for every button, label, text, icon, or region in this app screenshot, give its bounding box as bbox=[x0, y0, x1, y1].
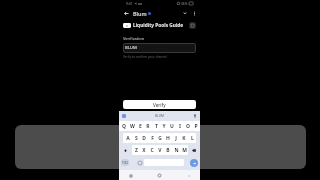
button[interactable]: L bbox=[188, 133, 196, 143]
staticText: Verification bbox=[123, 36, 145, 41]
button[interactable]: B bbox=[164, 145, 172, 155]
button[interactable]: D bbox=[140, 133, 148, 143]
staticText: M bbox=[182, 147, 187, 154]
button[interactable]: C bbox=[148, 145, 156, 155]
staticText: W bbox=[130, 123, 135, 130]
staticText: BLUM bbox=[125, 45, 137, 51]
staticText: C bbox=[150, 147, 154, 154]
button[interactable]: Enter bbox=[190, 159, 198, 167]
button[interactable]: Liquidity Pools Guide bbox=[123, 19, 196, 31]
button[interactable]: Google search bbox=[137, 160, 142, 165]
button[interactable]: V bbox=[156, 145, 164, 155]
staticText: Q bbox=[122, 123, 126, 130]
staticText: R bbox=[146, 123, 150, 130]
button[interactable]: E bbox=[136, 121, 144, 131]
button[interactable]: Q bbox=[119, 121, 128, 131]
staticText: Blum bbox=[133, 10, 147, 17]
button[interactable]: H bbox=[164, 133, 172, 143]
button[interactable]: K bbox=[180, 133, 188, 143]
staticText: X bbox=[142, 147, 146, 154]
button[interactable]: Back bbox=[185, 172, 192, 179]
staticText: V bbox=[158, 147, 162, 154]
staticText: Y bbox=[162, 123, 166, 130]
button[interactable]: R bbox=[144, 121, 152, 131]
button[interactable]: Keyboard settings bbox=[121, 113, 127, 119]
button[interactable]: X bbox=[140, 145, 148, 155]
staticText: Z bbox=[135, 147, 138, 154]
button[interactable]: Open video bbox=[189, 22, 196, 29]
button[interactable]: Backspace bbox=[188, 145, 200, 155]
staticText: K bbox=[182, 135, 186, 142]
staticText: 36% bbox=[181, 2, 188, 6]
button[interactable]: O bbox=[184, 121, 192, 131]
button[interactable]: Back bbox=[121, 8, 131, 18]
button[interactable]: M bbox=[180, 145, 188, 155]
button[interactable]: T bbox=[152, 121, 160, 131]
staticText: I bbox=[179, 123, 181, 130]
staticText: U bbox=[170, 123, 174, 130]
staticText: E bbox=[139, 123, 142, 130]
staticText: F bbox=[151, 135, 154, 142]
staticText: Verify to confirm your channel bbox=[123, 55, 167, 59]
button[interactable]: P bbox=[192, 121, 200, 131]
staticText: 9:41 bbox=[126, 2, 133, 6]
staticText: Liquidity Pools Guide bbox=[133, 22, 184, 29]
button[interactable]: J bbox=[172, 133, 180, 143]
staticText: BLUM bbox=[155, 114, 164, 118]
staticText: G bbox=[158, 135, 162, 142]
staticText: S bbox=[135, 135, 138, 142]
button[interactable]: Recents bbox=[127, 172, 134, 179]
button[interactable]: Home bbox=[156, 172, 163, 179]
staticText: T bbox=[155, 123, 158, 130]
button[interactable]: A bbox=[123, 133, 132, 143]
button[interactable]: More options bbox=[190, 9, 198, 17]
button[interactable]: Y bbox=[160, 121, 168, 131]
staticText: L bbox=[191, 135, 194, 142]
staticText: ?123 bbox=[122, 161, 128, 165]
staticText: D bbox=[142, 135, 146, 142]
button[interactable]: Verify bbox=[123, 100, 196, 109]
staticText: J bbox=[175, 135, 177, 142]
staticText: H bbox=[166, 135, 170, 142]
button[interactable]: Expand bbox=[180, 8, 190, 18]
button[interactable]: BLUM bbox=[123, 43, 196, 53]
staticText: O bbox=[186, 123, 190, 130]
button[interactable]: S bbox=[132, 133, 140, 143]
button[interactable]: Shift bbox=[119, 145, 132, 155]
button[interactable]: U bbox=[168, 121, 176, 131]
button[interactable]: F bbox=[148, 133, 156, 143]
button[interactable]: G bbox=[156, 133, 164, 143]
staticText: B bbox=[166, 147, 170, 154]
button[interactable]: Voice input bbox=[192, 113, 198, 119]
staticText: A bbox=[126, 135, 130, 142]
button[interactable]: Z bbox=[132, 145, 140, 155]
staticText: N bbox=[174, 147, 179, 154]
staticText: P bbox=[194, 123, 198, 130]
staticText: Verify bbox=[153, 102, 166, 108]
button[interactable]: W bbox=[128, 121, 136, 131]
button[interactable]: N bbox=[172, 145, 180, 155]
button[interactable]: I bbox=[176, 121, 184, 131]
button[interactable]: Symbols bbox=[121, 159, 129, 166]
